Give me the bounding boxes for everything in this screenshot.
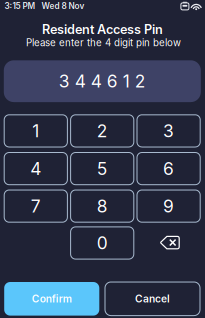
staticText: 1 xyxy=(32,120,39,141)
staticText: 3:15 PM xyxy=(4,1,35,11)
button[interactable]: Delete xyxy=(137,227,200,259)
staticText: 7 xyxy=(31,196,41,217)
staticText: 6 xyxy=(163,158,174,179)
button[interactable]: 5 xyxy=(71,152,134,185)
staticText: Please enter the 4 digit pin below xyxy=(26,37,181,49)
button[interactable]: 7 xyxy=(4,190,67,222)
button[interactable]: 1 xyxy=(4,115,67,147)
staticText: 5 xyxy=(97,158,108,179)
staticText: 3 xyxy=(163,120,174,141)
button[interactable]: 0 xyxy=(71,227,134,259)
button[interactable]: Cancel xyxy=(105,282,200,316)
staticText: Wed 8 Nov xyxy=(35,1,84,11)
button[interactable]: Confirm xyxy=(4,282,99,316)
staticText: Confirm xyxy=(32,293,72,305)
staticText: 0 xyxy=(97,232,108,253)
staticText: 4 xyxy=(30,158,41,179)
staticText: Cancel xyxy=(135,293,170,305)
button[interactable]: 2 xyxy=(71,115,134,147)
button[interactable]: 8 xyxy=(71,190,134,222)
staticText: 9 xyxy=(163,196,174,217)
button[interactable]: 4 xyxy=(4,152,67,185)
staticText: 2 xyxy=(97,120,108,141)
staticText: 3 4 4 6 1 2 xyxy=(59,71,146,92)
button[interactable]: 3 xyxy=(137,115,200,147)
staticText: Resident Access Pin xyxy=(42,22,163,37)
button[interactable]: 9 xyxy=(137,190,200,222)
staticText: 8 xyxy=(97,196,108,217)
button[interactable]: 6 xyxy=(137,152,200,185)
